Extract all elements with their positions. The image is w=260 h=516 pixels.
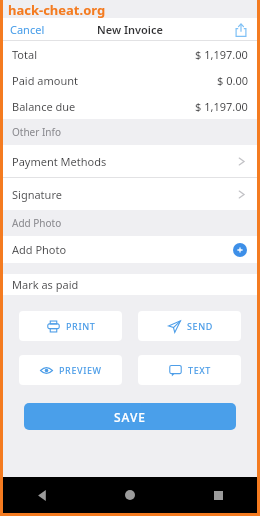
staticText: TEXT (188, 364, 212, 376)
button[interactable]: Add photo (233, 243, 247, 257)
button[interactable]: SAVE (24, 403, 236, 430)
staticText: New Invoice (97, 22, 163, 37)
staticText: $ 1,197.00 (195, 47, 248, 62)
staticText: Payment Methods (12, 154, 107, 169)
staticText: PRINT (66, 320, 96, 332)
staticText: Total (12, 47, 37, 62)
button[interactable]: PRINT (19, 311, 122, 341)
button[interactable]: SEND (138, 311, 241, 341)
staticText: Mark as paid (12, 277, 79, 292)
button[interactable]: Mark as paid (3, 274, 257, 295)
staticText: $ 0.00 (217, 73, 248, 88)
staticText: Balance due (12, 99, 76, 114)
staticText: Other Info (12, 125, 62, 139)
button[interactable]: Signature (3, 178, 257, 210)
button[interactable]: Add Photo (3, 236, 257, 263)
staticText: Add Photo (12, 216, 62, 230)
button[interactable]: Paid amount (3, 67, 257, 93)
button[interactable]: Back (31, 484, 53, 506)
button[interactable]: Cancel (10, 22, 45, 37)
button[interactable]: Share (233, 22, 249, 38)
staticText: Add Photo (12, 242, 67, 257)
staticText: PREVIEW (59, 364, 102, 376)
staticText: Signature (12, 187, 62, 202)
button[interactable]: TEXT (138, 355, 241, 385)
staticText: $ 1,197.00 (195, 99, 248, 114)
button[interactable]: Recents (207, 484, 229, 506)
staticText: SEND (187, 320, 213, 332)
button[interactable]: Total (3, 41, 257, 67)
staticText: SAVE (114, 409, 147, 425)
button[interactable]: Balance due (3, 93, 257, 119)
button[interactable]: Payment Methods (3, 145, 257, 177)
staticText: hack-cheat.org (8, 1, 106, 18)
staticText: Paid amount (12, 73, 78, 88)
button[interactable]: PREVIEW (19, 355, 122, 385)
button[interactable]: Home (119, 484, 141, 506)
